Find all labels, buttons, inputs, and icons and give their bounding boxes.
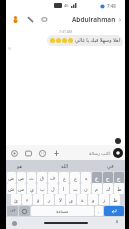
- button[interactable]: لا: [55, 194, 65, 205]
- button[interactable]: Enter: [104, 206, 124, 216]
- button[interactable]: ث: [27, 172, 36, 183]
- button[interactable]: Camera: [9, 148, 19, 158]
- staticText: في: [107, 163, 114, 169]
- button[interactable]: ف: [48, 172, 58, 183]
- staticText: ا: [63, 186, 65, 192]
- button[interactable]: Call: [25, 14, 35, 24]
- staticText: ص: [18, 175, 25, 181]
- staticText: خ: [95, 175, 99, 181]
- button[interactable]: ى: [66, 194, 76, 205]
- staticText: ه: [85, 175, 88, 181]
- button[interactable]: ج: [114, 172, 124, 183]
- staticText: ل: [51, 186, 55, 192]
- staticText: اكتب رسالة: [89, 150, 111, 156]
- staticText: لا: [59, 197, 62, 203]
- staticText: الله: [61, 163, 69, 169]
- button[interactable]: Video call: [40, 14, 50, 24]
- staticText: ج: [117, 175, 121, 181]
- staticText: ش: [8, 186, 15, 192]
- button[interactable]: ش: [7, 183, 16, 194]
- staticText: و: [92, 197, 95, 203]
- staticText: ر: [48, 197, 51, 203]
- button[interactable]: ن: [81, 183, 91, 194]
- staticText: 7:41 AM: [59, 29, 73, 34]
- button[interactable]: ل: [48, 183, 58, 194]
- staticText: مسافة: [56, 209, 69, 214]
- staticText: ح: [106, 175, 110, 181]
- button[interactable]: ض: [7, 172, 16, 183]
- staticText: ز: [103, 197, 106, 203]
- button[interactable]: Profile: [10, 14, 20, 24]
- staticText: ف: [50, 175, 56, 181]
- button[interactable]: م: [92, 183, 102, 194]
- button[interactable]: هو: [14, 162, 26, 170]
- button[interactable]: Attach: [51, 148, 61, 158]
- staticText: ع: [74, 175, 77, 181]
- button[interactable]: ؟١٢: [7, 206, 18, 216]
- staticText: ئ: [14, 197, 18, 203]
- button[interactable]: Send: [113, 148, 123, 158]
- button[interactable]: ه: [81, 172, 91, 183]
- button[interactable]: ئ: [11, 194, 21, 205]
- staticText: هو: [17, 163, 23, 169]
- button[interactable]: ر: [44, 194, 54, 205]
- button[interactable]: Sticker: [37, 148, 47, 158]
- staticText: ة: [81, 197, 84, 203]
- button[interactable]: في: [104, 162, 117, 170]
- button[interactable]: س: [17, 183, 26, 194]
- staticText: 7:48: [107, 3, 116, 9]
- button[interactable]: ح: [103, 172, 113, 183]
- staticText: س: [18, 186, 25, 192]
- staticText: ن: [84, 186, 88, 192]
- staticText: ق: [40, 175, 44, 181]
- button[interactable]: ؤ: [33, 194, 43, 205]
- button[interactable]: الله: [58, 162, 72, 170]
- button[interactable]: غ: [59, 172, 69, 183]
- button[interactable]: Abdulrahman: [72, 15, 122, 24]
- button[interactable]: ب: [37, 183, 47, 194]
- staticText: 46: [64, 3, 69, 8]
- button[interactable]: و: [88, 194, 98, 205]
- button[interactable]: .: [95, 206, 103, 216]
- staticText: ي: [30, 186, 34, 192]
- button[interactable]: مسافة: [31, 206, 94, 216]
- staticText: ى: [69, 197, 73, 203]
- button[interactable]: ق: [37, 172, 47, 183]
- button[interactable]: ء: [22, 194, 32, 205]
- staticText: ك: [106, 186, 111, 192]
- staticText: ؤ: [37, 197, 40, 203]
- staticText: ث: [29, 175, 34, 181]
- staticText: م: [95, 186, 99, 192]
- staticText: ت: [73, 186, 78, 192]
- button[interactable]: ع: [70, 172, 80, 183]
- staticText: اهلا وسهلا فيك يا غالي: [75, 37, 120, 44]
- button[interactable]: Emoji: [19, 206, 30, 216]
- staticText: ض: [8, 175, 15, 181]
- staticText: Abdulrahman: [72, 15, 116, 24]
- staticText: ط: [117, 186, 122, 192]
- button[interactable]: ت: [70, 183, 80, 194]
- button[interactable]: ا: [59, 183, 69, 194]
- button[interactable]: ظ: [110, 194, 120, 205]
- staticText: ؟١٢: [10, 209, 16, 213]
- button[interactable]: ي: [27, 183, 36, 194]
- staticText: ء: [26, 197, 29, 203]
- button[interactable]: اهلا وسهلا فيك يا غالي: [47, 35, 123, 46]
- staticText: ظ: [113, 197, 118, 203]
- button[interactable]: ك: [103, 183, 113, 194]
- staticText: غ: [63, 175, 66, 181]
- button[interactable]: Gallery: [23, 148, 33, 158]
- button[interactable]: ة: [77, 194, 87, 205]
- staticText: ب: [40, 186, 45, 192]
- staticText: .: [98, 208, 100, 215]
- button[interactable]: خ: [92, 172, 102, 183]
- button[interactable]: ز: [99, 194, 109, 205]
- button[interactable]: ط: [114, 183, 124, 194]
- button[interactable]: ص: [17, 172, 26, 183]
